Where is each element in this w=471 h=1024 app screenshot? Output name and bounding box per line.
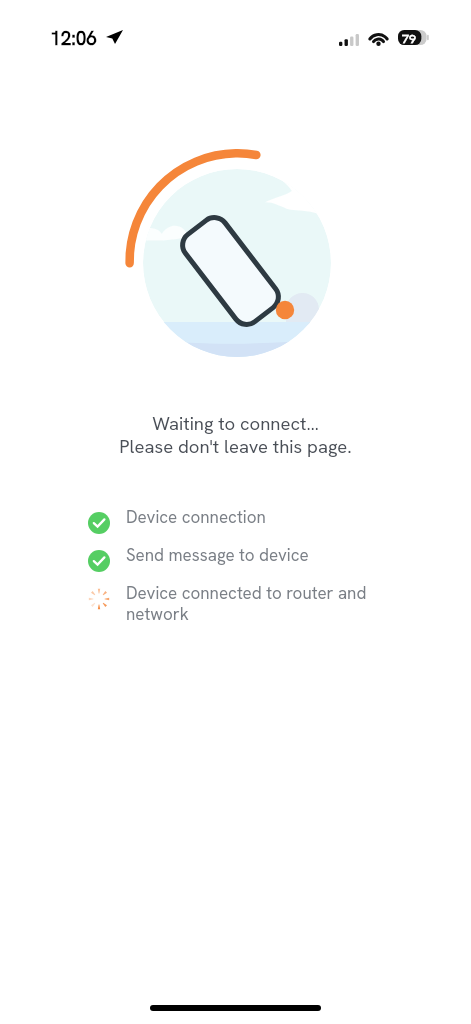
staticText: 79 bbox=[402, 30, 417, 45]
button[interactable]: In progress bbox=[88, 582, 367, 625]
button[interactable]: Completed bbox=[88, 506, 266, 528]
other: In progress bbox=[88, 588, 110, 610]
staticText: Device connection bbox=[126, 506, 266, 528]
other: Completed bbox=[88, 512, 110, 534]
staticText: Send message to device bbox=[126, 544, 309, 566]
button[interactable]: Completed bbox=[88, 544, 309, 566]
other: Completed bbox=[88, 550, 110, 572]
staticText: Waiting to connect… Please don't leave t… bbox=[0, 411, 471, 459]
staticText: Device connected to router and network bbox=[126, 582, 367, 625]
staticText: 12:06 bbox=[50, 26, 98, 51]
